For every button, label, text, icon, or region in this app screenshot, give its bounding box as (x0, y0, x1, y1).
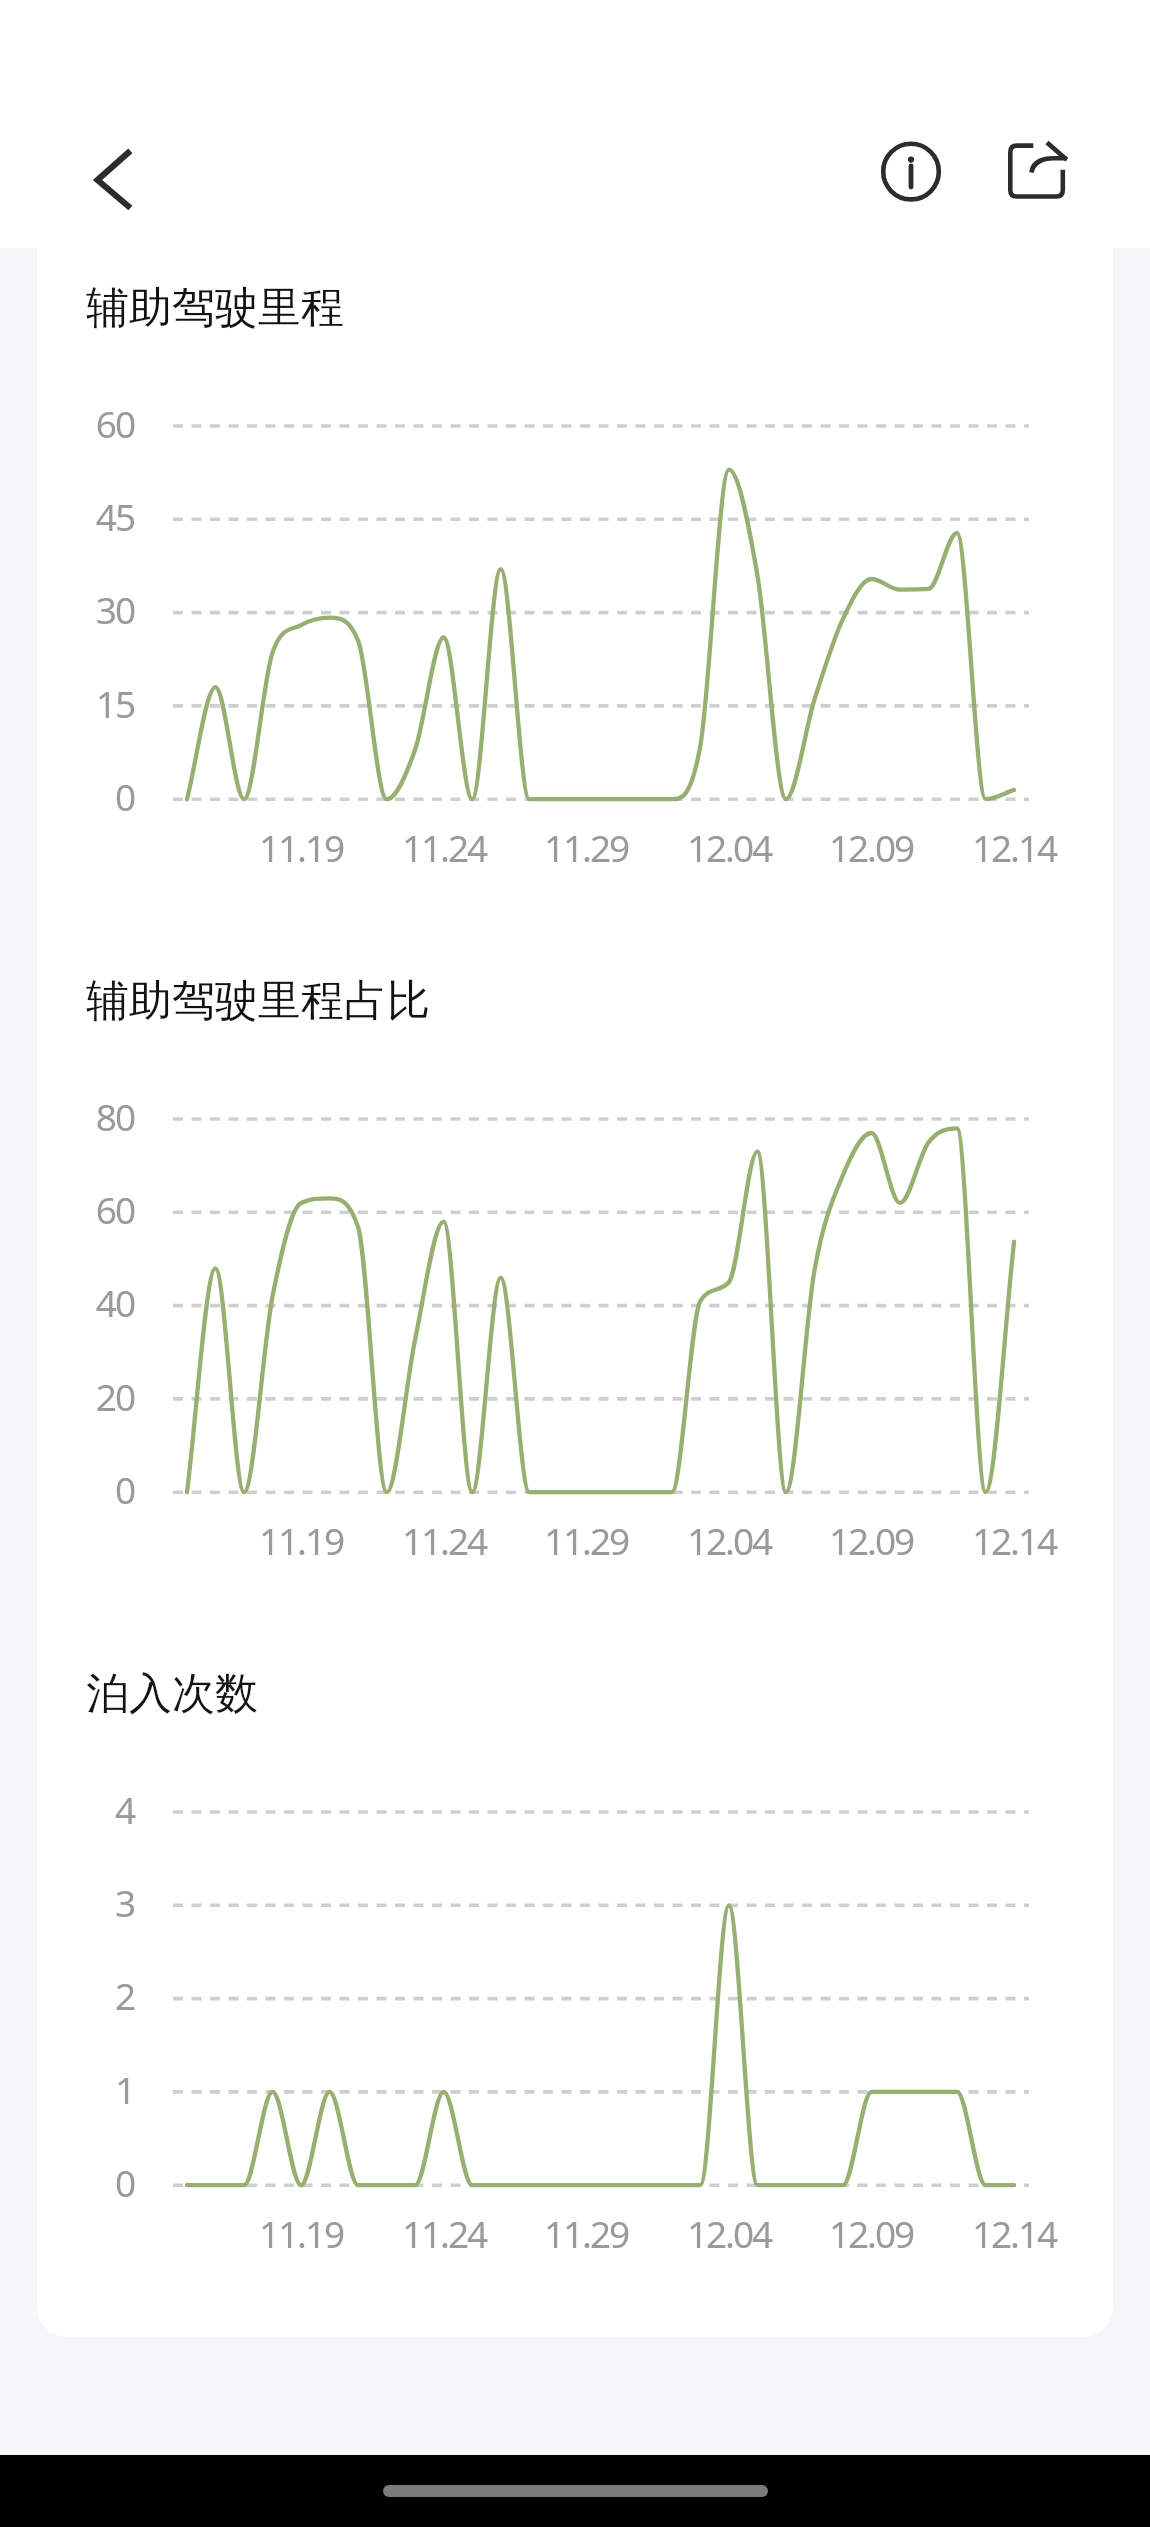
staticText: 11.19 (221, 822, 381, 872)
staticText: 60 (0, 398, 134, 448)
staticText: 3 (0, 1877, 134, 1927)
staticText: 15 (0, 678, 134, 728)
staticText: 2 (0, 1970, 134, 2020)
button[interactable]: Back (63, 131, 161, 229)
staticText: 0 (0, 1464, 134, 1514)
staticText: 30 (0, 584, 134, 634)
staticText: 11.29 (506, 822, 666, 872)
staticText: 45 (0, 491, 134, 541)
staticText: 11.24 (364, 1515, 524, 1565)
staticText: 60 (0, 1184, 134, 1234)
staticText: 12.09 (791, 1515, 951, 1565)
staticText: 12.14 (934, 822, 1094, 872)
staticText: 辅助驾驶里程占比 (86, 974, 430, 1028)
staticText: 辅助驾驶里程 (86, 281, 344, 335)
staticText: 1 (0, 2064, 134, 2114)
staticText: 11.29 (506, 2208, 666, 2258)
staticText: 12.09 (791, 2208, 951, 2258)
staticText: 11.24 (364, 2208, 524, 2258)
staticText: 12.14 (934, 1515, 1094, 1565)
staticText: 11.19 (221, 1515, 381, 1565)
button[interactable]: Share (988, 122, 1086, 220)
staticText: 40 (0, 1277, 134, 1327)
button[interactable]: Info (862, 122, 960, 220)
staticText: 12.14 (934, 2208, 1094, 2258)
staticText: 4 (0, 1784, 134, 1834)
staticText: 12.04 (649, 2208, 809, 2258)
staticText: 0 (0, 2157, 134, 2207)
staticText: 0 (0, 771, 134, 821)
staticText: 12.04 (649, 1515, 809, 1565)
staticText: 20 (0, 1371, 134, 1421)
staticText: 12.04 (649, 822, 809, 872)
staticText: 11.29 (506, 1515, 666, 1565)
staticText: 11.19 (221, 2208, 381, 2258)
staticText: 泊入次数 (86, 1667, 258, 1721)
staticText: 11.24 (364, 822, 524, 872)
staticText: 12.09 (791, 822, 951, 872)
staticText: 80 (0, 1091, 134, 1141)
